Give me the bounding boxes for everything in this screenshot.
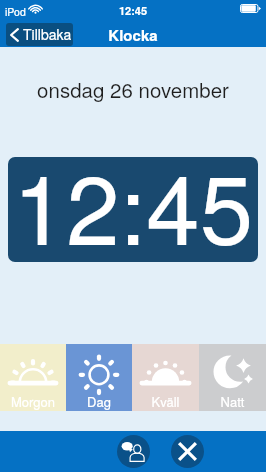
button[interactable]: Dag xyxy=(66,344,132,411)
staticText: Natt xyxy=(199,392,266,411)
staticText: Dag xyxy=(66,392,132,411)
staticText: Tillbaka xyxy=(23,24,72,44)
staticText: Morgon xyxy=(0,392,66,411)
button[interactable]: Morgon xyxy=(0,344,66,411)
staticText: 12:45 xyxy=(0,3,266,19)
staticText: iPod xyxy=(5,4,26,19)
staticText: Kväll xyxy=(132,392,199,411)
button[interactable]: Contact xyxy=(117,435,150,468)
button[interactable]: Close xyxy=(171,435,204,468)
button[interactable]: Tillbaka xyxy=(6,23,73,46)
staticText: onsdag 26 november xyxy=(0,74,266,103)
staticText: Klocka xyxy=(0,24,266,45)
button[interactable]: Natt xyxy=(199,344,266,411)
button[interactable]: Kväll xyxy=(132,344,199,411)
staticText: 12:45 xyxy=(0,135,266,272)
